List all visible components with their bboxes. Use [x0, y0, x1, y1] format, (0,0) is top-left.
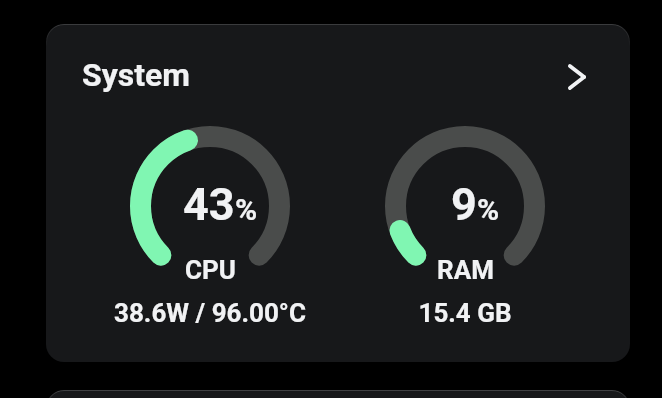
- button[interactable]: System: [46, 24, 630, 362]
- staticText: 38.6W / 96.00°C: [114, 298, 306, 328]
- button[interactable]: [46, 390, 630, 398]
- staticText: 15.4 GB: [418, 298, 512, 328]
- button[interactable]: Open System details: [562, 62, 592, 92]
- staticText: RAM: [437, 255, 494, 285]
- staticText: 9: [451, 178, 477, 231]
- staticText: CPU: [185, 255, 236, 285]
- staticText: System: [82, 56, 191, 94]
- staticText: %: [477, 192, 500, 227]
- staticText: 43: [183, 178, 235, 231]
- staticText: %: [235, 192, 258, 227]
